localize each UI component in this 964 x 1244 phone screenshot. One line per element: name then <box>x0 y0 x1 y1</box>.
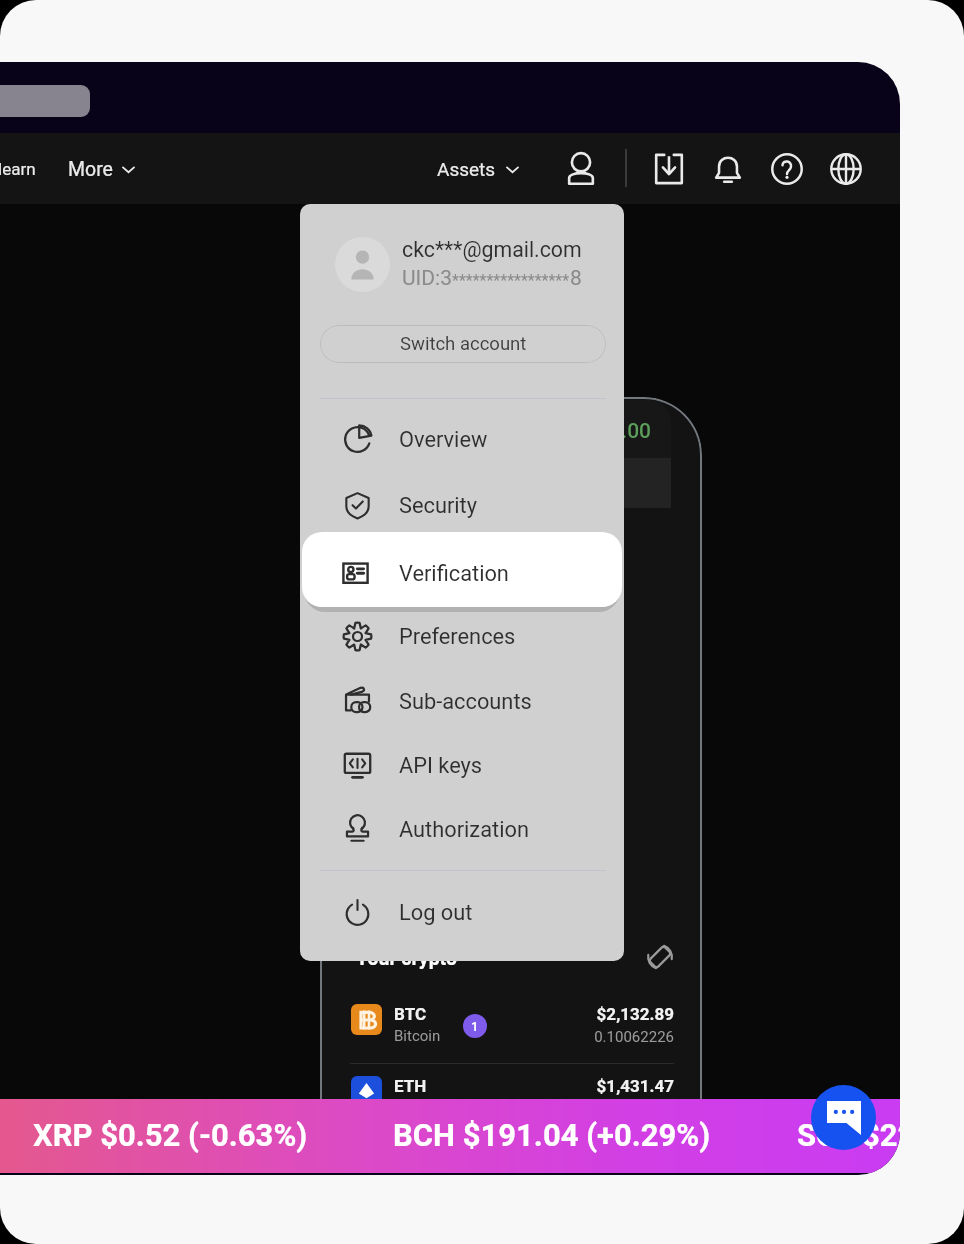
button[interactable]: Help <box>767 149 807 189</box>
staticText: 1 <box>471 1019 479 1034</box>
staticText: XRP $0.52 (-0.63%) <box>33 1117 308 1153</box>
button[interactable]: Preferences <box>300 604 624 669</box>
button[interactable]: Assets <box>431 149 526 189</box>
staticText: SOL $22.48 (+1.42%) <box>797 1117 900 1153</box>
staticText: ETH <box>394 1076 427 1096</box>
button[interactable]: Chat support <box>811 1085 876 1150</box>
button[interactable]: API keys <box>300 733 624 798</box>
button[interactable]: Sub-accounts <box>300 669 624 734</box>
staticText: $1,587.00 <box>557 419 652 444</box>
button[interactable]: Overview <box>300 407 624 472</box>
staticText: Verification <box>399 561 509 587</box>
staticText: Security <box>399 493 478 519</box>
staticText: Switch account <box>400 333 527 355</box>
staticText: $1,431.47 <box>564 1076 674 1096</box>
button[interactable]: Switch account <box>320 325 606 363</box>
staticText: Bitcoin <box>394 1027 441 1045</box>
staticText: 0.10062226 <box>564 1028 674 1046</box>
staticText: Preferences <box>399 624 516 650</box>
button[interactable]: Log out <box>300 880 624 945</box>
staticText: BCH $191.04 (+0.29%) <box>393 1117 711 1153</box>
staticText: ***************** <box>452 271 570 290</box>
staticText: More <box>68 158 113 181</box>
button[interactable]: Deposit <box>649 149 689 189</box>
staticText: Overview <box>399 427 488 453</box>
staticText: learn <box>0 159 36 179</box>
button[interactable]: Notifications <box>708 149 748 189</box>
button[interactable]: learn <box>0 149 42 189</box>
staticText: ckc***@gmail.com <box>402 237 582 262</box>
staticText: BTC <box>394 1004 427 1024</box>
staticText: Your crypto <box>356 947 457 970</box>
button[interactable]: ETH <box>351 1069 674 1104</box>
staticText: Authorization <box>399 817 529 843</box>
button[interactable]: Rotate screen <box>647 944 673 970</box>
button[interactable]: More <box>62 149 142 189</box>
button[interactable]: Language <box>826 149 866 189</box>
staticText: Log out <box>399 900 473 926</box>
button[interactable]: BTC <box>351 997 674 1061</box>
button[interactable]: Authorization <box>300 797 624 862</box>
button[interactable]: Account <box>561 149 601 189</box>
staticText: 8 <box>570 266 582 291</box>
staticText: API keys <box>399 753 483 779</box>
staticText: $2,132.89 <box>564 1004 674 1024</box>
button[interactable]: Verification <box>302 532 622 607</box>
button[interactable]: Security <box>300 473 624 538</box>
staticText: Sub-accounts <box>399 689 532 715</box>
staticText: Assets <box>437 158 496 180</box>
staticText: UID:3 <box>402 266 452 291</box>
